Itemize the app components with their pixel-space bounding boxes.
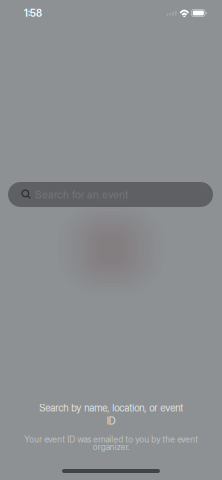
- staticText: Your event ID was emailed to you by the …: [24, 434, 198, 452]
- staticText: Search by name, location, or event ID: [39, 402, 183, 427]
- staticText: Search for an event: [35, 188, 128, 201]
- button[interactable]: Search for an event: [8, 182, 213, 207]
- staticText: 1:58: [24, 7, 42, 19]
